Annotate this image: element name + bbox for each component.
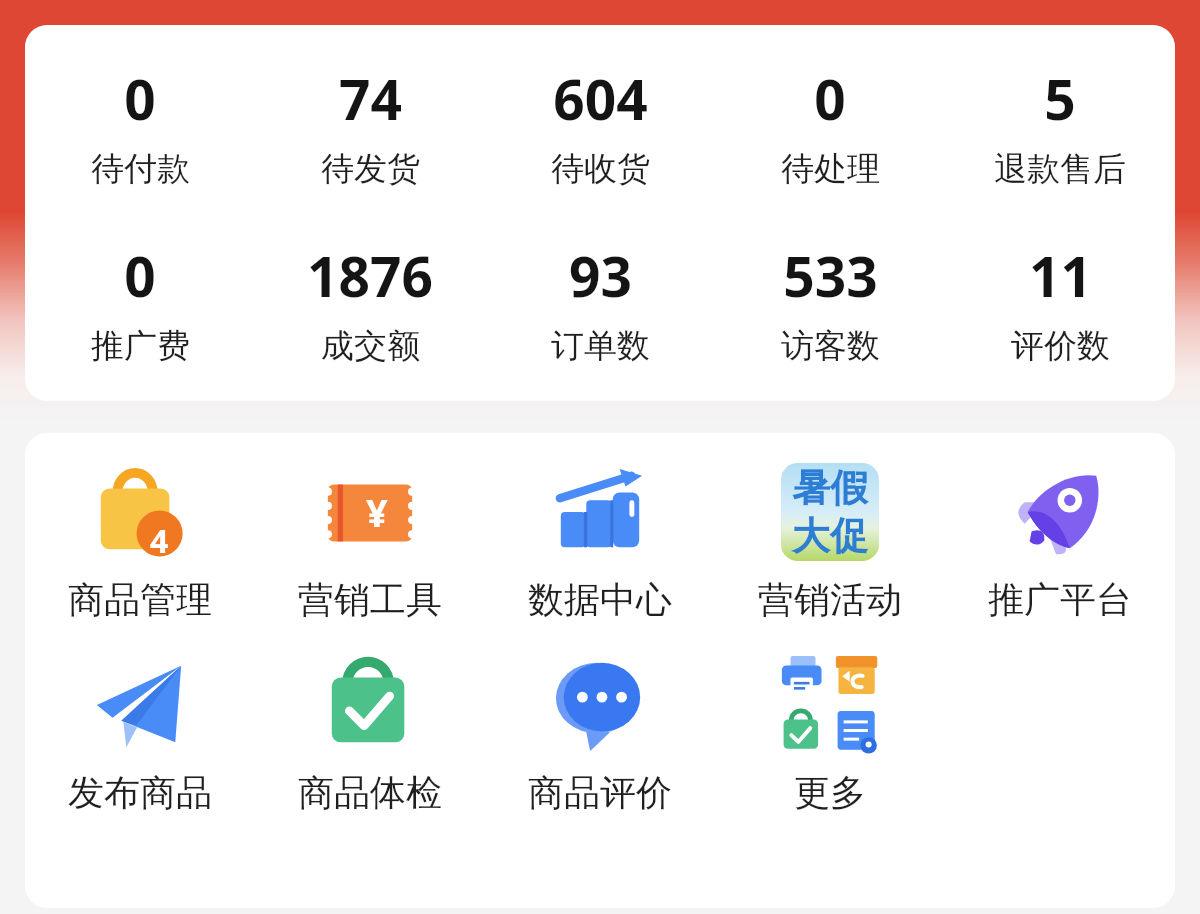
button[interactable]: Promotion platform [945,463,1175,622]
staticText: 数据中心 [528,577,672,622]
staticText: 533 [783,238,878,313]
staticText: 604 [553,61,648,136]
staticText: 发布商品 [68,770,212,815]
staticText: 退款售后 [994,148,1126,190]
staticText: 评价数 [1011,325,1110,367]
button[interactable]: 93 [485,238,715,367]
button[interactable]: Publish product [25,656,255,815]
button[interactable]: 74 [255,61,485,190]
staticText: 商品体检 [298,770,442,815]
button[interactable]: Data center [485,463,715,622]
staticText: 商品评价 [528,770,672,815]
button[interactable]: More [715,656,945,815]
staticText: 访客数 [781,325,880,367]
staticText: 更多 [794,770,866,815]
staticText: 4 [150,519,169,561]
staticText: 74 [339,61,402,136]
staticText: 待收货 [551,148,650,190]
staticText: 待付款 [91,148,190,190]
staticText: 0 [124,238,156,313]
staticText: 推广平台 [988,577,1132,622]
button[interactable]: Marketing tools [255,463,485,622]
staticText: 待处理 [781,148,880,190]
staticText: 5 [1044,61,1076,136]
button[interactable]: 0 [715,61,945,190]
button[interactable]: 0 [25,238,255,367]
staticText: 订单数 [551,325,650,367]
staticText: 暑假 [792,464,868,512]
staticText: 11 [1029,238,1092,313]
button[interactable]: 11 [945,238,1175,367]
staticText: 0 [814,61,846,136]
staticText: 待发货 [321,148,420,190]
staticText: 推广费 [91,325,190,367]
staticText: 93 [569,238,632,313]
staticText: 营销活动 [758,577,902,622]
staticText: ¥ [366,486,388,538]
button[interactable]: Product check [255,656,485,815]
button[interactable]: 1876 [255,238,485,367]
button[interactable]: 533 [715,238,945,367]
staticText: 营销工具 [298,577,442,622]
button[interactable]: 0 [25,61,255,190]
staticText: 大促 [792,512,868,560]
staticText: 商品管理 [68,577,212,622]
button[interactable]: 604 [485,61,715,190]
button[interactable]: Product management [25,463,255,622]
button[interactable]: Product reviews [485,656,715,815]
button[interactable]: 5 [945,61,1175,190]
staticText: 成交额 [321,325,420,367]
button[interactable]: Marketing campaign [715,463,945,622]
staticText: 0 [124,61,156,136]
staticText: 1876 [307,238,433,313]
